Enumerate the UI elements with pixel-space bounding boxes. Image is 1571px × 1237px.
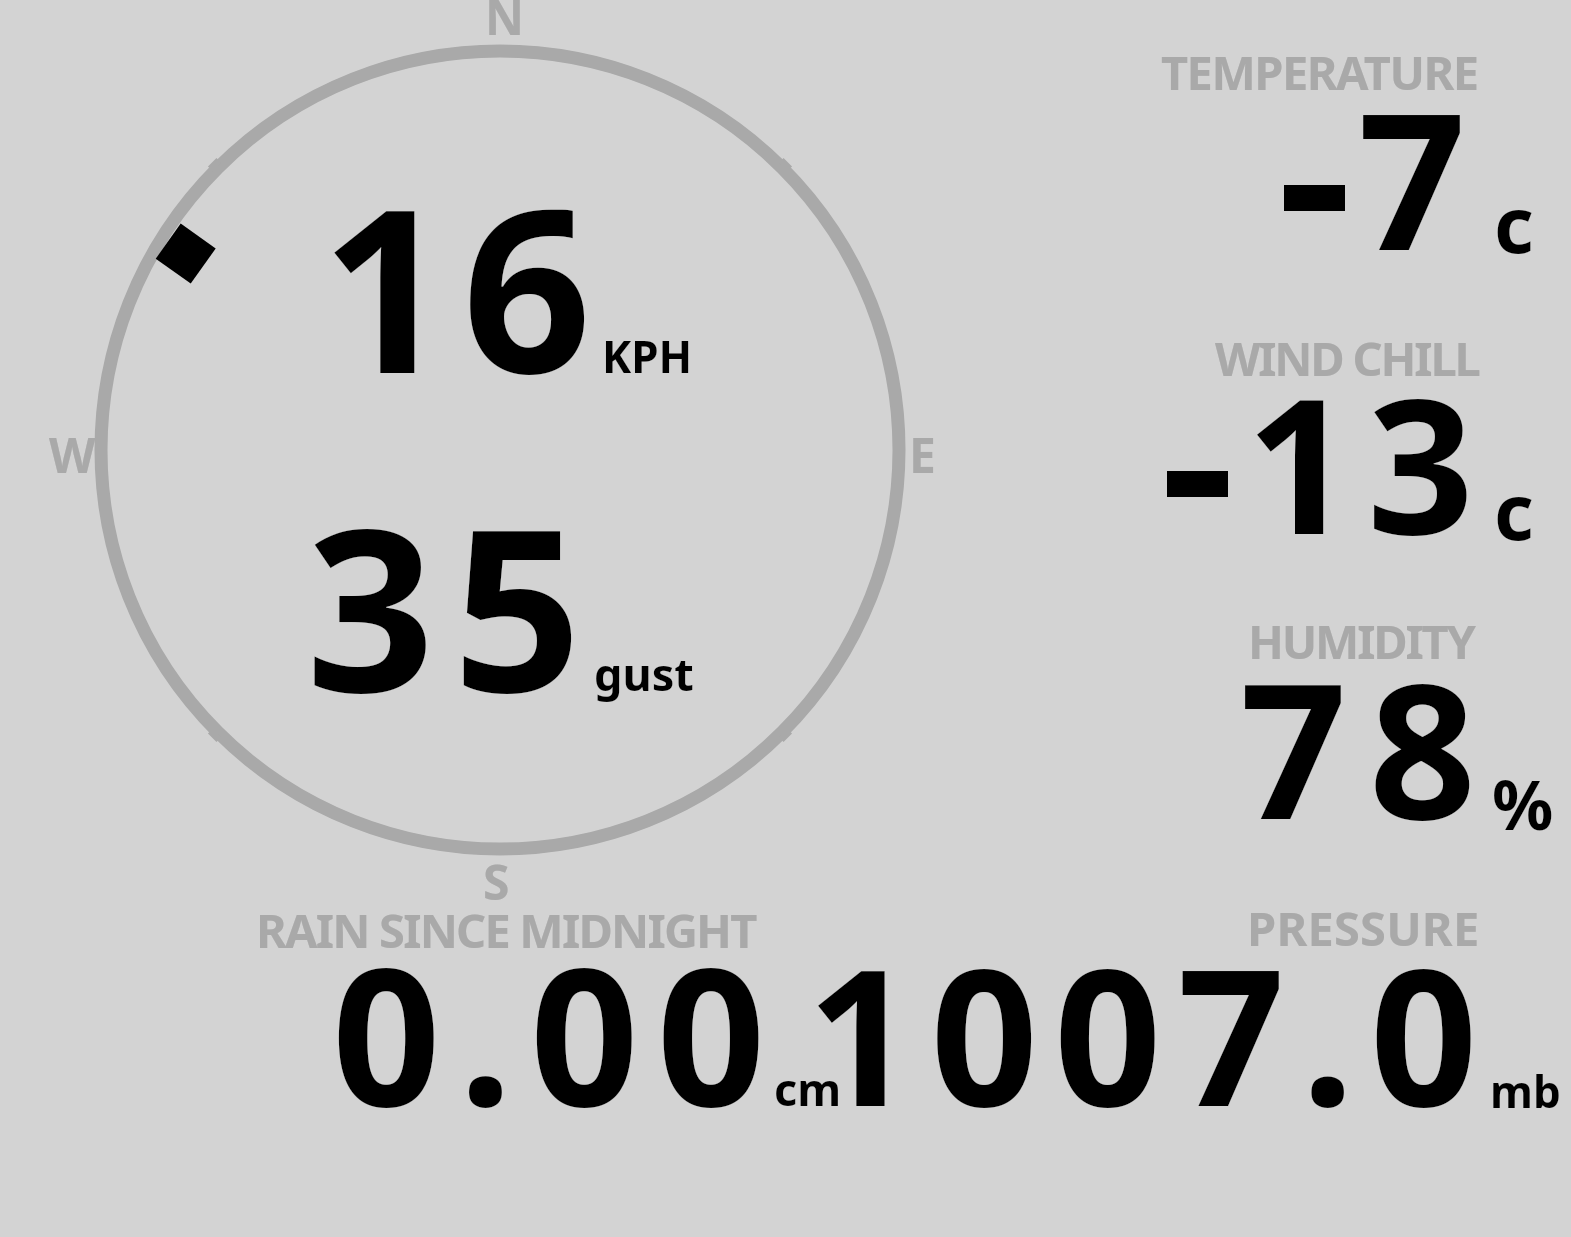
- staticText: c: [1494, 458, 1534, 563]
- staticText: 35: [306, 451, 600, 757]
- button[interactable]: Humidity: [1000, 595, 1571, 845]
- staticText: RAIN SINCE MIDNIGHT: [256, 898, 756, 962]
- staticText: 0.00: [332, 903, 784, 1162]
- staticText: 7: [1358, 48, 1467, 305]
- staticText: TEMPERATURE: [1161, 40, 1478, 104]
- staticText: E: [909, 422, 936, 487]
- staticText: 16: [321, 131, 604, 439]
- staticText: mb: [1490, 1061, 1561, 1121]
- button[interactable]: Rain since midnight: [230, 880, 860, 1130]
- staticText: WIND CHILL: [1215, 326, 1479, 390]
- staticText: HUMIDITY: [1248, 609, 1474, 673]
- staticText: W: [49, 422, 96, 487]
- staticText: cm: [774, 1058, 842, 1119]
- button[interactable]: Wind speed and direction: [90, 40, 910, 870]
- staticText: PRESSURE: [1247, 896, 1480, 960]
- staticText: KPH: [602, 326, 693, 386]
- button[interactable]: Temperature: [1000, 30, 1571, 300]
- staticText: 1007.0: [807, 905, 1494, 1161]
- button[interactable]: Wind chill: [1000, 310, 1571, 580]
- button[interactable]: Pressure: [870, 880, 1571, 1130]
- staticText: gust: [594, 643, 694, 704]
- staticText: N: [485, 0, 525, 49]
- staticText: 13: [1246, 334, 1488, 589]
- staticText: 78: [1240, 619, 1498, 874]
- staticText: %: [1492, 757, 1554, 850]
- staticText: c: [1494, 171, 1534, 276]
- staticText: S: [483, 849, 510, 914]
